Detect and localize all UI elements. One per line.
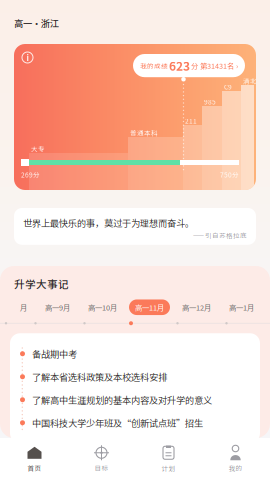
staticText: 月 (20, 302, 27, 312)
button[interactable]: 了解本省选科政策及本校选科安排 (10, 365, 260, 388)
staticText: 623 (169, 57, 190, 74)
staticText: 高一9月 (45, 302, 70, 312)
button[interactable]: 我的 (202, 438, 269, 480)
staticText: 269分 (21, 170, 40, 179)
staticText: 750分 (220, 170, 239, 179)
staticText: 目标 (94, 463, 108, 473)
staticText: 了解高中生涯规划的基本内容及对升学的意义 (32, 393, 212, 406)
staticText: —— 引自苏格拉底 (193, 230, 247, 240)
button[interactable]: 了解高中生涯规划的基本内容及对升学的意义 (10, 388, 260, 411)
staticText: 普通本科 (130, 128, 158, 137)
staticText: 大专 (31, 144, 45, 153)
button[interactable]: 首页 (1, 438, 68, 480)
staticText: 高一·浙江 (14, 16, 59, 30)
staticText: 211 (185, 116, 197, 125)
staticText: 我的 (228, 463, 242, 473)
staticText: 了解本省选科政策及本校选科安排 (32, 370, 167, 383)
staticText: 首页 (27, 463, 41, 473)
staticText: 分 第31431名 › (191, 60, 238, 71)
staticText: 高一1月 (229, 302, 254, 312)
staticText: 世界上最快乐的事，莫过于为理想而奋斗。 (23, 216, 194, 229)
button[interactable]: 备战期中考 (10, 342, 260, 365)
staticText: 升学大事记 (14, 276, 69, 291)
staticText: 高一10月 (88, 302, 117, 312)
button[interactable]: 我的成绩 (133, 54, 245, 77)
staticText: i (26, 52, 28, 63)
button[interactable]: 高一1月 (220, 299, 263, 315)
button[interactable]: 说明 (22, 52, 33, 63)
button[interactable]: 高一11月 (126, 299, 173, 315)
staticText: 计划 (161, 463, 175, 473)
button[interactable]: 计划 (135, 438, 202, 480)
staticText: 中国科技大学少年班及“创新试点班”招生 (32, 416, 203, 429)
button[interactable]: 目标 (68, 438, 135, 480)
staticText: 我的成绩 (140, 61, 168, 70)
button[interactable]: 高一9月 (36, 299, 79, 315)
staticText: 985 (204, 97, 216, 106)
staticText: 高一11月 (135, 302, 164, 312)
button[interactable]: 高一10月 (79, 299, 126, 315)
staticText: 清北 (243, 76, 257, 85)
staticText: C9 (224, 82, 232, 91)
button[interactable]: 高一12月 (173, 299, 220, 315)
staticText: 高一12月 (182, 302, 211, 312)
button[interactable]: 月 (11, 299, 36, 315)
button[interactable]: 中国科技大学少年班及“创新试点班”招生 (10, 411, 260, 434)
staticText: 备战期中考 (32, 347, 77, 360)
